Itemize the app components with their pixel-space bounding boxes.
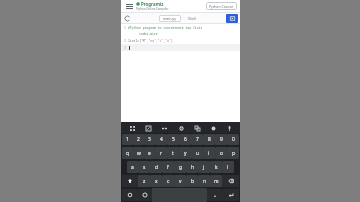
staticText: ] [171, 39, 173, 43]
button[interactable]: Period [207, 189, 222, 201]
staticText: 3 [124, 46, 126, 50]
staticText: u [196, 150, 199, 157]
staticText: Programiz [141, 1, 164, 7]
staticText: "M","na","i","a" [141, 39, 171, 43]
button[interactable]: p [227, 147, 239, 159]
staticText: v [179, 178, 182, 185]
button[interactable]: x [150, 175, 162, 187]
staticText: i [208, 150, 210, 157]
button[interactable]: v [174, 175, 186, 187]
button[interactable]: 9 [215, 134, 227, 145]
staticText: j [203, 164, 205, 171]
staticText: 2 [137, 136, 140, 143]
staticText: m [214, 178, 219, 185]
staticText: c [167, 178, 170, 185]
staticText: Python Course [209, 4, 234, 9]
button[interactable]: 3 [144, 134, 155, 145]
button[interactable]: 7 [191, 134, 203, 145]
button[interactable]: 2 [133, 134, 144, 145]
button[interactable]: j [198, 161, 210, 173]
staticText: 7 [196, 136, 199, 143]
staticText: f [167, 164, 169, 171]
button[interactable]: 8 [203, 134, 215, 145]
button[interactable]: Backspace [222, 175, 239, 187]
button[interactable]: h [186, 161, 198, 173]
staticText: Shell [188, 16, 196, 21]
button[interactable]: Theme [208, 123, 218, 133]
button[interactable]: w [133, 147, 144, 159]
button[interactable]: n [198, 175, 210, 187]
staticText: q [126, 150, 129, 157]
button[interactable]: u [191, 147, 203, 159]
staticText: p [232, 150, 235, 157]
staticText: d [155, 164, 158, 171]
staticText: l [227, 164, 229, 171]
button[interactable]: Translate [192, 123, 202, 133]
staticText: x [155, 178, 158, 185]
button[interactable]: s [138, 161, 150, 173]
staticText: 1 [124, 26, 126, 30]
staticText: Python Online Compiler [136, 7, 169, 11]
staticText: 9 [220, 136, 223, 143]
staticText: 5 [172, 136, 175, 143]
button[interactable]: b [186, 175, 198, 187]
staticText: o [220, 150, 223, 157]
button[interactable]: c [162, 175, 174, 187]
button[interactable]: l [222, 161, 234, 173]
button[interactable]: 0 [227, 134, 239, 145]
button[interactable]: t [167, 147, 179, 159]
staticText: 6 [184, 136, 187, 143]
button[interactable]: Shift [122, 175, 138, 187]
button[interactable]: Menu [124, 1, 134, 11]
staticText: index-wise [139, 32, 158, 36]
button[interactable]: d [150, 161, 162, 173]
staticText: g [179, 164, 182, 171]
button[interactable]: Reset [123, 14, 132, 23]
staticText: 3 [148, 136, 151, 143]
button[interactable]: Settings [176, 123, 186, 133]
staticText: list1=[ [128, 39, 141, 43]
staticText: z [143, 178, 146, 185]
button[interactable]: z [138, 175, 150, 187]
staticText: n [203, 178, 206, 185]
button[interactable]: 4 [155, 134, 167, 145]
button[interactable]: 6 [179, 134, 191, 145]
button[interactable]: Sticker [159, 123, 169, 133]
button[interactable]: 1 [122, 134, 133, 145]
button[interactable]: Emoji [137, 189, 152, 201]
button[interactable]: y [179, 147, 191, 159]
button[interactable]: k [210, 161, 222, 173]
staticText: t [172, 150, 174, 157]
button[interactable]: Python Course [206, 2, 237, 10]
staticText: k [215, 164, 218, 171]
button[interactable]: e [144, 147, 155, 159]
button[interactable]: 5 [167, 134, 179, 145]
button[interactable]: Emoji grid [127, 123, 137, 133]
button[interactable]: i [203, 147, 215, 159]
staticText: 1 [126, 136, 129, 143]
button[interactable]: o [215, 147, 227, 159]
button[interactable]: Enter [222, 189, 239, 201]
button[interactable]: GIF [143, 123, 153, 133]
button[interactable]: Run [226, 14, 238, 23]
button[interactable]: Voice input [224, 123, 234, 133]
staticText: main.py [163, 16, 177, 21]
staticText: r [160, 150, 162, 157]
button[interactable]: r [155, 147, 167, 159]
staticText: h [191, 164, 194, 171]
staticText: #Python program to concatenate two lists [128, 26, 203, 30]
button[interactable]: main.py [159, 15, 181, 22]
button[interactable]: f [162, 161, 174, 173]
button[interactable]: g [174, 161, 186, 173]
button[interactable]: Symbols [122, 189, 137, 201]
button[interactable]: Shell [186, 15, 198, 22]
staticText: 2 [124, 39, 126, 43]
staticText: s [143, 164, 146, 171]
staticText: y [184, 150, 187, 157]
button[interactable]: a [127, 161, 138, 173]
button[interactable]: m [210, 175, 222, 187]
staticText: 4 [160, 136, 163, 143]
staticText: w [137, 150, 141, 157]
button[interactable]: q [122, 147, 133, 159]
